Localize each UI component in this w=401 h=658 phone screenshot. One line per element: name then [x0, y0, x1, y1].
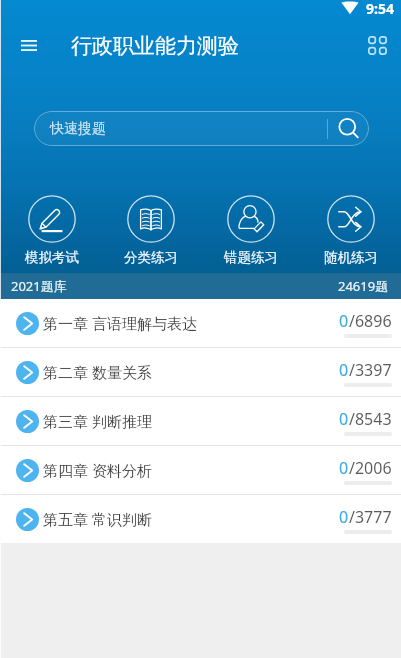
button[interactable]: 随机练习	[301, 195, 401, 266]
staticText: 0	[339, 408, 349, 430]
staticText: /8543	[349, 408, 392, 430]
button[interactable]: 第五章 常识判断	[0, 495, 401, 543]
staticText: 模拟考试	[25, 249, 79, 266]
staticText: 0	[339, 359, 349, 381]
staticText: 9:54	[366, 0, 394, 18]
staticText: /2006	[349, 457, 392, 479]
staticText: 0	[339, 310, 349, 332]
staticText: 2021题库	[11, 277, 67, 295]
button[interactable]: Menu	[0, 22, 50, 70]
staticText: 第五章 常识判断	[43, 509, 152, 529]
staticText: 分类练习	[124, 249, 178, 266]
button[interactable]: 第一章 言语理解与表达	[0, 299, 401, 347]
staticText: 快速搜题	[50, 120, 106, 138]
staticText: 第一章 言语理解与表达	[43, 313, 197, 333]
staticText: 24619题	[338, 277, 389, 295]
staticText: 错题练习	[224, 249, 278, 266]
button[interactable]: 第三章 判断推理	[0, 397, 401, 445]
staticText: 0	[339, 506, 349, 528]
staticText: 第四章 资料分析	[43, 460, 152, 480]
staticText: 0	[339, 457, 349, 479]
button[interactable]: 第二章 数量关系	[0, 348, 401, 396]
button[interactable]: Grid menu	[357, 24, 401, 68]
button[interactable]: 分类练习	[101, 195, 201, 266]
button[interactable]: 第四章 资料分析	[0, 446, 401, 494]
staticText: 第二章 数量关系	[43, 362, 152, 382]
button[interactable]: 模拟考试	[2, 195, 101, 266]
staticText: /3397	[349, 359, 392, 381]
staticText: /6896	[349, 310, 392, 332]
staticText: 随机练习	[324, 249, 378, 266]
staticText: 行政职业能力测验	[71, 33, 239, 59]
button[interactable]: 错题练习	[201, 195, 301, 266]
staticText: 第三章 判断推理	[43, 411, 152, 431]
staticText: /3777	[349, 506, 392, 528]
button[interactable]: 快速搜题	[34, 111, 369, 146]
